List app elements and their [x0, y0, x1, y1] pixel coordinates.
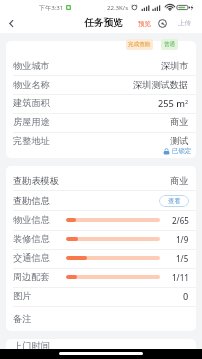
staticText: 上门时间 — [13, 340, 50, 352]
staticText: 255 m — [158, 97, 185, 110]
staticText: 周边配套 — [13, 271, 50, 283]
staticText: 查看 — [168, 197, 181, 205]
staticText: 物业城市 — [13, 60, 50, 72]
staticText: 备注 — [13, 313, 32, 325]
button[interactable]: 预览 — [138, 19, 167, 28]
staticText: 物业信息 — [13, 214, 50, 226]
staticText: 深圳测试数据 — [133, 79, 189, 91]
staticText: 图片 — [13, 290, 32, 302]
staticText: 22.3K/s — [107, 3, 129, 11]
staticText: 深圳市 — [161, 60, 189, 72]
staticText: 任务预览 — [84, 17, 123, 29]
staticText: 0 — [183, 290, 189, 303]
staticText: 测试 — [170, 135, 189, 147]
staticText: 交通信息 — [13, 252, 50, 264]
staticText: 1/5 — [176, 253, 189, 264]
staticText: 预览 — [138, 20, 152, 28]
staticText: 1/9 — [176, 234, 189, 245]
staticText: 物业名称 — [13, 79, 50, 91]
staticText: 1/11 — [172, 272, 189, 283]
staticText: 2 — [185, 98, 189, 105]
staticText: 建筑面积 — [13, 97, 50, 109]
button[interactable]: 查看 — [159, 195, 189, 207]
staticText: 查勘表模板 — [13, 175, 59, 187]
button[interactable]: 上传 — [178, 19, 192, 27]
staticText: 已锁定 — [172, 147, 192, 155]
staticText: 装修信息 — [13, 233, 50, 245]
staticText: 2/65 — [172, 215, 189, 226]
staticText: 下午3:31 — [39, 3, 64, 11]
staticText: 完整地址 — [13, 135, 50, 147]
staticText: 查勘信息 — [13, 195, 50, 207]
button[interactable]: Back — [0, 13, 22, 33]
staticText: 完成查勘 — [128, 41, 151, 48]
staticText: 普通 — [164, 41, 176, 48]
staticText: 商业 — [170, 116, 189, 128]
staticText: 商业 — [170, 175, 189, 187]
staticText: 房屋用途 — [13, 116, 50, 128]
